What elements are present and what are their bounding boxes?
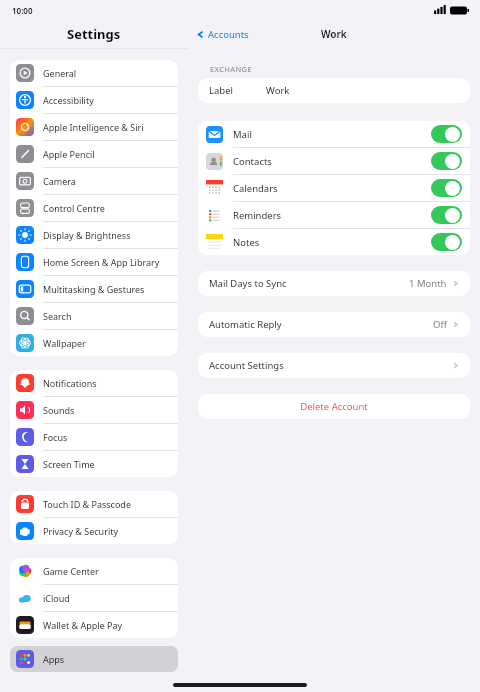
button[interactable]: Camera [10,168,178,194]
button[interactable]: Display & Brightness [10,222,178,248]
button[interactable]: Game Center [10,558,178,584]
staticText: Search [43,310,72,322]
staticText: Off [433,318,447,331]
staticText: Wallpaper [43,337,86,349]
button[interactable]: Apple Pencil [10,141,178,167]
button[interactable]: Delete Account [198,394,470,419]
staticText: Control Centre [43,202,105,214]
staticText: Apple Pencil [43,148,95,160]
button[interactable]: Contacts [198,148,470,174]
button[interactable]: Focus [10,424,178,450]
staticText: Screen Time [43,458,95,470]
button[interactable]: Wallet & Apple Pay [10,612,178,638]
button[interactable]: Toggle on [431,206,462,224]
staticText: Delete Account [300,400,368,413]
staticText: Focus [43,431,68,443]
staticText: Account Settings [209,359,284,372]
staticText: Wallet & Apple Pay [43,619,123,631]
staticText: Apple Intelligence & Siri [43,121,144,133]
button[interactable]: Notifications [10,370,178,396]
button[interactable]: Label [198,78,470,103]
button[interactable]: Privacy & Security [10,518,178,544]
button[interactable]: Wallpaper [10,330,178,356]
staticText: Work [321,27,347,41]
staticText: Privacy & Security [43,525,119,537]
button[interactable]: Account Settings [198,353,470,378]
button[interactable]: Sounds [10,397,178,423]
button[interactable]: Screen Time [10,451,178,477]
button[interactable]: Apple Intelligence & Siri [10,114,178,140]
staticText: Accessibility [43,94,94,106]
button[interactable]: General [10,60,178,86]
staticText: General [43,67,77,79]
staticText: Multitasking & Gestures [43,283,145,295]
staticText: Home Screen & App Library [43,256,160,268]
staticText: Apps [43,653,65,665]
button[interactable]: Notes [198,229,470,255]
staticText: Work [266,84,290,97]
button[interactable]: Accounts [194,25,251,44]
staticText: EXCHANGE [210,64,253,74]
staticText: Automatic Reply [209,318,282,331]
button[interactable]: Mail Days to Sync [198,271,470,296]
staticText: Notes [233,236,260,249]
staticText: Camera [43,175,76,187]
button[interactable]: Mail [198,121,470,147]
button[interactable]: Toggle on [431,233,462,251]
button[interactable]: Toggle on [431,179,462,197]
button[interactable]: Touch ID & Passcode [10,491,178,517]
staticText: Notifications [43,377,97,389]
staticText: 1 Month [409,277,447,290]
staticText: Reminders [233,209,282,222]
button[interactable]: Toggle on [431,125,462,143]
staticText: Label [209,84,233,97]
button[interactable]: Automatic Reply [198,312,470,337]
staticText: Game Center [43,565,99,577]
button[interactable]: Home Screen & App Library [10,249,178,275]
staticText: 10:00 [12,5,33,16]
staticText: Mail [233,128,252,141]
staticText: Settings [67,25,121,43]
staticText: Contacts [233,155,272,168]
button[interactable]: Search [10,303,178,329]
button[interactable]: iCloud [10,585,178,611]
button[interactable]: Accessibility [10,87,178,113]
staticText: Sounds [43,404,75,416]
staticText: Mail Days to Sync [209,277,287,290]
button[interactable]: Multitasking & Gestures [10,276,178,302]
button[interactable]: Toggle on [431,152,462,170]
button[interactable]: Apps [10,646,178,672]
staticText: Calendars [233,182,278,195]
button[interactable]: Reminders [198,202,470,228]
staticText: Display & Brightness [43,229,131,241]
button[interactable]: Calendars [198,175,470,201]
staticText: Touch ID & Passcode [43,498,131,510]
staticText: Accounts [208,28,249,41]
staticText: iCloud [43,592,70,604]
button[interactable]: Control Centre [10,195,178,221]
